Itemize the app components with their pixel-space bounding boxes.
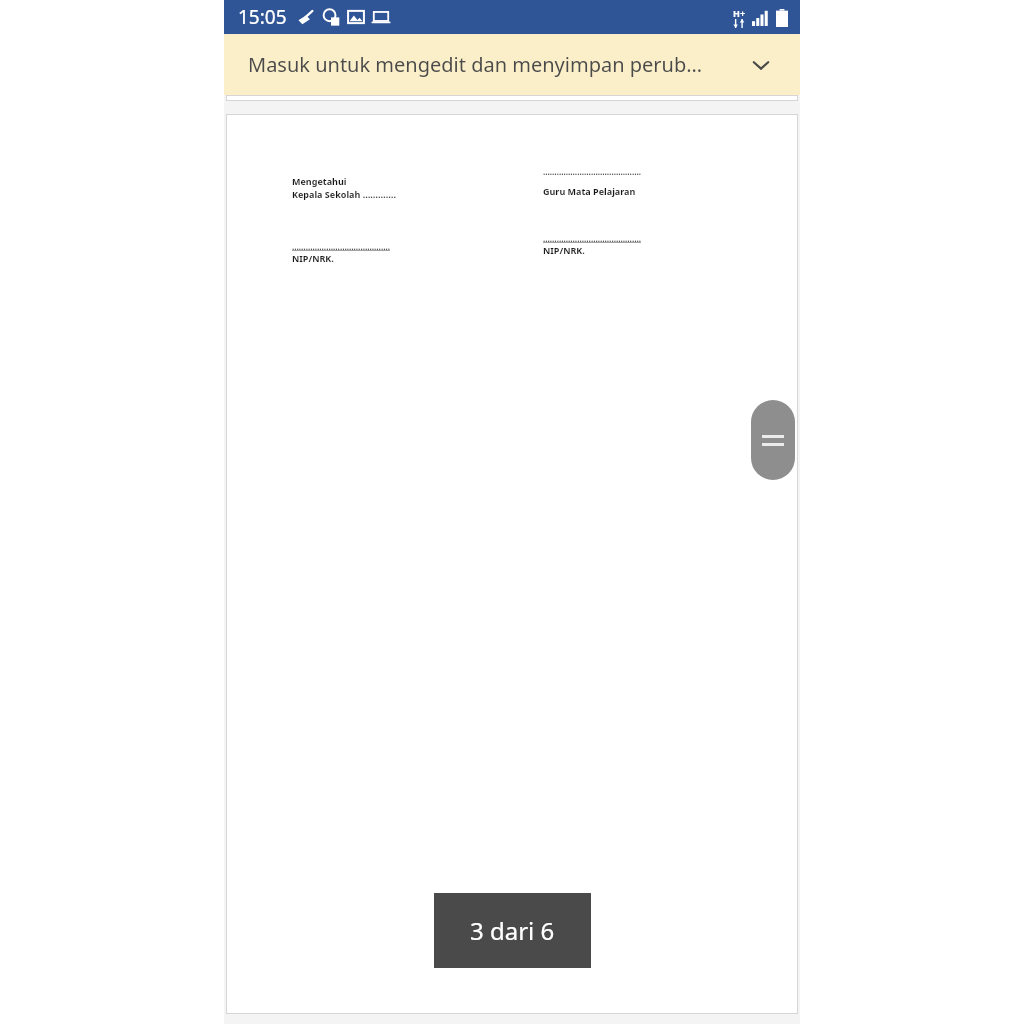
staticText: 15:05 — [238, 4, 287, 30]
staticText: Mengetahui — [292, 175, 347, 187]
staticText: NIP/NRK. — [543, 244, 585, 256]
button[interactable]: Scroll — [751, 400, 795, 480]
staticText: Masuk untuk mengedit dan menyimpan perub… — [248, 51, 744, 78]
button[interactable]: 3 dari 6 — [434, 893, 591, 968]
staticText: ……………………………………. — [292, 241, 391, 252]
staticText: ……………………………………. — [543, 233, 642, 244]
staticText: H+ — [733, 7, 746, 19]
staticText: Guru Mata Pelajaran — [543, 185, 636, 197]
button[interactable]: Masuk untuk mengedit dan menyimpan perub… — [224, 34, 800, 95]
staticText: NIP/NRK. — [292, 252, 334, 264]
staticText: ……………………………………. — [543, 166, 642, 177]
staticText: Kepala Sekolah …………. — [292, 188, 396, 200]
staticText: 3 dari 6 — [470, 914, 555, 947]
button[interactable]: Expand — [744, 48, 778, 82]
button[interactable]: Mengetahui — [226, 114, 798, 1014]
